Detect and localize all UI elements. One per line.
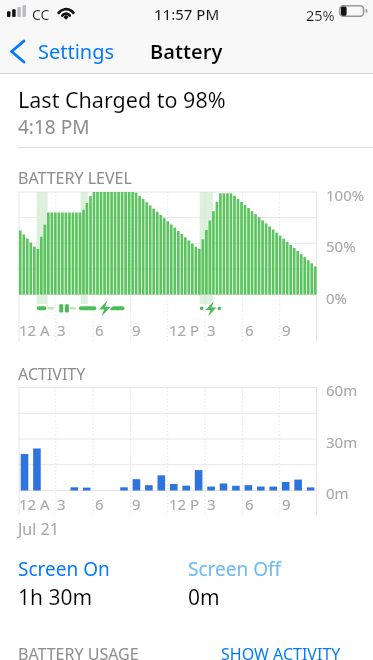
staticText: 9 (132, 320, 141, 340)
staticText: 9 (282, 320, 291, 340)
staticText: SHOW ACTIVITY (221, 643, 341, 660)
button[interactable]: SHOW ACTIVITY (221, 643, 341, 660)
staticText: 6 (95, 320, 104, 340)
staticText: 12 P (169, 494, 200, 514)
staticText: 6 (95, 494, 104, 514)
staticText: BATTERY USAGE (18, 643, 139, 660)
staticText: 12 A (19, 494, 50, 514)
button[interactable]: Settings (0, 34, 125, 69)
button[interactable]: Screen On (18, 556, 110, 582)
staticText: 12 P (169, 320, 200, 340)
staticText: 50% (326, 236, 356, 256)
button[interactable]: Screen Off (188, 556, 282, 582)
staticText: 30m (326, 432, 358, 452)
staticText: 3 (57, 494, 66, 514)
staticText: 100% (326, 185, 365, 205)
staticText: CC (32, 5, 50, 24)
staticText: 0% (326, 288, 348, 308)
staticText: Last Charged to 98% (18, 85, 226, 114)
staticText: 4:18 PM (18, 114, 90, 140)
staticText: 9 (282, 494, 291, 514)
staticText: Jul 21 (18, 518, 59, 540)
staticText: 1h 30m (18, 583, 93, 612)
staticText: Screen Off (188, 556, 282, 582)
staticText: 12 A (19, 320, 50, 340)
staticText: 9 (132, 494, 141, 514)
staticText: 3 (207, 494, 216, 514)
staticText: Battery (150, 38, 223, 65)
staticText: 60m (326, 380, 358, 400)
staticText: BATTERY LEVEL (18, 167, 132, 189)
staticText: Settings (38, 38, 115, 65)
staticText: 25% (306, 5, 335, 25)
staticText: 3 (57, 320, 66, 340)
staticText: 0m (326, 483, 349, 503)
staticText: 6 (245, 494, 254, 514)
staticText: 0m (188, 583, 220, 612)
staticText: Screen On (18, 556, 110, 582)
staticText: 3 (207, 320, 216, 340)
staticText: 6 (245, 320, 254, 340)
staticText: 11:57 PM (154, 4, 220, 24)
staticText: ACTIVITY (18, 363, 86, 385)
